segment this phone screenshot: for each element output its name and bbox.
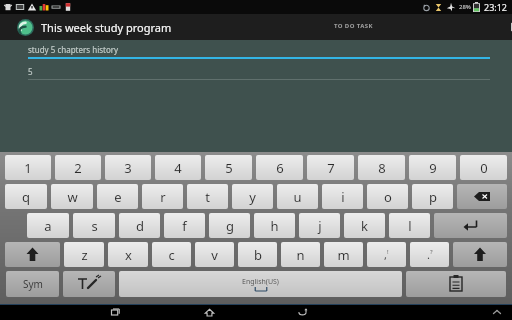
staticText: b [254,246,262,264]
button[interactable]: l [389,213,430,238]
staticText: s [91,217,98,235]
staticText: n [296,246,305,264]
staticText: TO DO TASK [334,22,373,30]
staticText: k [361,217,368,235]
staticText: u [293,188,302,206]
staticText: d [136,217,144,235]
button[interactable]: q [5,184,47,209]
button[interactable]: h [254,213,295,238]
button[interactable]: TO DO TASK [194,14,512,40]
staticText: English(US) [242,277,279,287]
button[interactable]: Backspace [457,184,507,209]
button[interactable]: f [164,213,205,238]
staticText: 28% [459,3,471,11]
staticText: 4 [174,159,182,177]
staticText: . [427,247,430,262]
button[interactable]: Sym [6,271,59,297]
staticText: 7 [327,159,335,177]
button[interactable]: s [73,213,115,238]
button[interactable]: v [195,242,234,267]
button[interactable]: study 5 chapters history [28,44,490,59]
staticText: h [270,217,279,235]
button[interactable]: 8 [358,155,405,180]
button[interactable]: d [119,213,160,238]
button[interactable]: o [367,184,408,209]
staticText: f [182,217,187,235]
staticText: 0 [480,159,488,177]
staticText: j [318,217,322,235]
button[interactable]: 3 [105,155,151,180]
staticText: 5 [225,159,233,177]
button[interactable]: y [232,184,273,209]
staticText: 3 [124,159,132,177]
staticText: g [226,217,234,235]
button[interactable]: j [299,213,340,238]
staticText: 8 [378,159,386,177]
button[interactable]: 5 [28,66,490,80]
button[interactable]: Recent apps [102,304,130,320]
staticText: ? [430,248,433,256]
button[interactable]: Space, English US [119,271,402,297]
staticText: a [44,217,52,235]
button[interactable]: Clipboard [406,271,506,297]
staticText: w [67,188,78,206]
staticText: l [408,217,412,235]
button[interactable]: t [187,184,228,209]
button[interactable]: x [108,242,148,267]
button[interactable]: , [367,242,406,267]
staticText: p [429,188,437,206]
button[interactable]: 4 [155,155,201,180]
button[interactable]: Enter [434,213,507,238]
button[interactable]: Shift [5,242,60,267]
staticText: q [22,188,30,206]
button[interactable]: r [142,184,183,209]
staticText: c [168,246,175,264]
button[interactable]: w [51,184,93,209]
button[interactable]: Home [195,304,223,320]
staticText: e [114,188,122,206]
staticText: x [125,246,132,264]
button[interactable]: Shift [453,242,507,267]
button[interactable]: . [410,242,449,267]
staticText: o [384,188,392,206]
staticText: 2 [74,159,82,177]
staticText: 5 [28,66,33,77]
staticText: 6 [276,159,284,177]
button[interactable]: z [64,242,104,267]
button[interactable]: u [277,184,318,209]
button[interactable]: 2 [55,155,101,180]
staticText: m [337,246,350,264]
staticText: r [160,188,166,206]
staticText: 1 [24,159,32,177]
staticText: 9 [429,159,437,177]
staticText: i [341,188,345,206]
button[interactable]: a [27,213,69,238]
button[interactable]: 0 [460,155,507,180]
button[interactable]: g [209,213,250,238]
button[interactable]: b [238,242,277,267]
staticText: 23:12 [484,1,508,13]
staticText: This week study program [41,20,172,35]
button[interactable]: 7 [307,155,354,180]
button[interactable]: n [281,242,320,267]
button[interactable]: 6 [256,155,303,180]
button[interactable]: m [324,242,363,267]
button[interactable]: p [412,184,453,209]
staticText: z [81,246,88,264]
button[interactable]: c [152,242,191,267]
staticText: y [249,188,256,206]
button[interactable]: 9 [409,155,456,180]
staticText: , [384,247,387,262]
staticText: study 5 chapters history [28,44,119,55]
button[interactable]: i [322,184,363,209]
button[interactable]: Back [288,304,316,320]
button[interactable]: Input method [63,271,115,297]
staticText: v [211,246,218,264]
button[interactable]: k [344,213,385,238]
staticText: ! [387,248,389,256]
button[interactable]: 5 [205,155,252,180]
button[interactable]: 1 [5,155,51,180]
button[interactable]: e [97,184,138,209]
staticText: Sym [23,277,43,291]
button[interactable]: Expand [484,304,510,320]
